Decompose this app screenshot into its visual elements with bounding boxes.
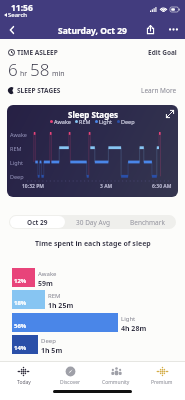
button[interactable]: 18% — [12, 290, 45, 309]
button[interactable]: 56% — [12, 313, 118, 332]
staticText: Benchmark — [130, 218, 165, 227]
staticText: Edit Goal — [148, 48, 177, 57]
button[interactable]: Back — [4, 22, 19, 37]
staticText: hr — [20, 69, 28, 79]
staticText: Sleep Stages — [68, 109, 118, 120]
staticText: Deep — [121, 118, 135, 125]
staticText: 30 Day Avg — [76, 218, 110, 227]
staticText: 56% — [14, 322, 27, 330]
staticText: Awake — [54, 118, 71, 125]
staticText: REM — [48, 292, 61, 300]
staticText: Search — [8, 11, 27, 19]
staticText: 1h 5m — [41, 346, 63, 356]
staticText: Awake — [10, 131, 27, 138]
staticText: Light — [121, 315, 136, 323]
staticText: 6 — [8, 58, 18, 81]
button[interactable]: Oct 29 — [10, 216, 65, 228]
button[interactable]: More options — [166, 22, 181, 37]
staticText: 10:32 PM — [22, 183, 44, 190]
staticText: Premium — [151, 379, 173, 386]
staticText: 58 — [30, 58, 50, 81]
staticText: REM — [10, 145, 22, 152]
staticText: 59m — [38, 279, 53, 289]
staticText: Oct 29 — [27, 218, 48, 227]
staticText: 14% — [14, 344, 27, 352]
staticText: 1h 25m — [48, 301, 74, 311]
staticText: Time spent in each stage of sleep — [35, 239, 151, 249]
button[interactable]: 14% — [12, 335, 38, 354]
staticText: Light — [99, 118, 113, 125]
staticText: 6:30 AM — [152, 183, 172, 190]
staticText: Today — [17, 379, 31, 386]
staticText: 3 AM — [100, 183, 113, 190]
button[interactable]: Share — [143, 22, 158, 37]
staticText: 18% — [14, 299, 27, 307]
staticText: Deep — [41, 337, 56, 345]
staticText: SLEEP STAGES — [17, 86, 61, 95]
button[interactable]: 30 Day Avg — [65, 216, 120, 228]
staticText: TIME ASLEEP — [17, 48, 58, 57]
staticText: 12% — [14, 277, 27, 285]
button[interactable]: Community — [93, 363, 139, 389]
button[interactable]: Benchmark — [120, 216, 175, 228]
staticText: Saturday, Oct 29 — [58, 25, 127, 37]
staticText: Community — [102, 379, 130, 386]
staticText: Discover — [60, 379, 81, 386]
button[interactable]: 12% — [12, 268, 35, 287]
staticText: Light — [10, 159, 24, 166]
button[interactable]: Premium — [139, 363, 185, 389]
button[interactable]: Today — [0, 363, 47, 389]
staticText: Deep — [10, 173, 24, 180]
button[interactable]: Expand chart — [161, 105, 178, 122]
staticText: REM — [79, 118, 91, 125]
staticText: Awake — [38, 270, 57, 278]
button[interactable]: Learn More — [141, 86, 177, 95]
staticText: Learn More — [141, 86, 177, 95]
staticText: min — [52, 69, 65, 79]
button[interactable]: Discover — [47, 363, 93, 389]
button[interactable]: Edit Goal — [148, 48, 177, 57]
staticText: 11:56 — [11, 2, 33, 14]
staticText: 4h 28m — [121, 324, 147, 334]
